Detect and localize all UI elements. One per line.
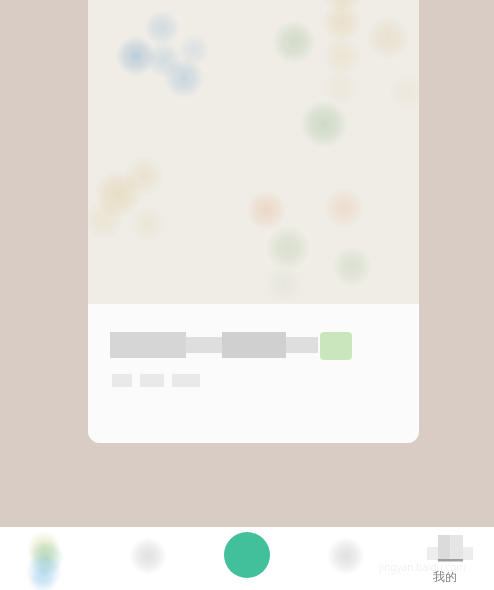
button[interactable]: Home xyxy=(0,527,98,590)
button[interactable]: Action xyxy=(88,0,419,443)
button[interactable]: Discover xyxy=(98,527,197,590)
button[interactable]: Action xyxy=(320,332,352,360)
button[interactable]: 我的 xyxy=(395,527,494,590)
button[interactable]: Add xyxy=(197,527,296,590)
staticText: 我的 xyxy=(433,569,457,584)
staticText: jingyan.baidu.com xyxy=(379,560,466,574)
button[interactable]: Messages xyxy=(296,527,395,590)
